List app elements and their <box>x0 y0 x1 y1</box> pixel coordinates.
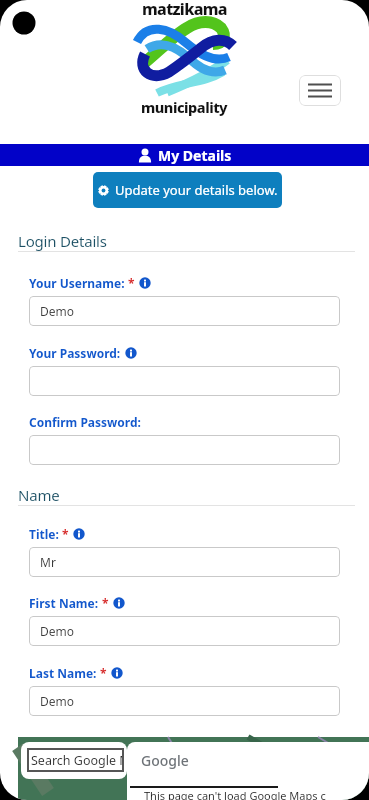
staticText: Search Google M <box>31 752 124 769</box>
button[interactable]: My Details <box>0 144 369 166</box>
staticText: Google <box>141 751 189 770</box>
staticText: municipality <box>141 97 228 117</box>
staticText: Update your details below. <box>115 181 278 199</box>
staticText: Your Username: <box>29 275 125 291</box>
staticText: * <box>99 595 109 611</box>
button[interactable]: Demo <box>29 616 340 646</box>
staticText: * <box>59 526 69 542</box>
button[interactable]: Search Google M <box>27 748 124 772</box>
staticText: Title: <box>29 526 59 542</box>
staticText: * <box>125 275 135 291</box>
button[interactable]: Mr <box>29 547 340 577</box>
button[interactable] <box>29 366 340 396</box>
staticText: Confirm Password: <box>29 414 141 430</box>
button[interactable]: Demo <box>29 686 340 716</box>
button[interactable] <box>29 435 340 465</box>
staticText: Your Password: <box>29 345 121 361</box>
button[interactable]: Demo <box>29 296 340 326</box>
staticText: My Details <box>158 146 232 165</box>
staticText: This page can't load Google Maps c <box>144 788 326 800</box>
staticText: Demo <box>40 623 75 639</box>
button[interactable] <box>299 75 341 106</box>
button[interactable]: Update your details below. <box>93 172 282 208</box>
staticText: Demo <box>40 303 75 319</box>
staticText: First Name: <box>29 595 99 611</box>
staticText: Last Name: <box>29 665 97 681</box>
staticText: * <box>97 665 107 681</box>
staticText: Old <box>96 738 115 753</box>
staticText: Login Details <box>18 231 107 251</box>
staticText: Name <box>18 485 60 505</box>
staticText: Demo <box>40 693 75 709</box>
staticText: Mr <box>40 554 56 570</box>
staticText: matzikama <box>142 0 227 20</box>
